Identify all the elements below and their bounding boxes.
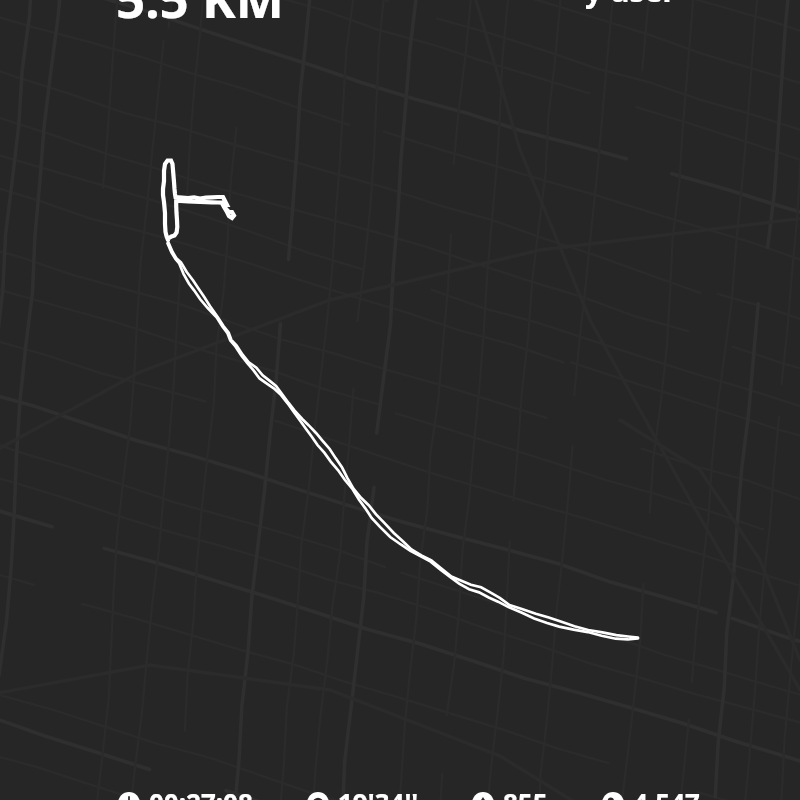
button[interactable]: Pace [307, 785, 419, 800]
button[interactable]: Calories [472, 785, 548, 800]
staticText: 00:27:08 [149, 785, 253, 800]
button[interactable]: Route map [0, 0, 800, 800]
staticText: 855 [503, 785, 548, 800]
button[interactable]: Duration [118, 785, 253, 800]
button[interactable]: 5.5 KM [116, 0, 284, 32]
staticText: 19'34'' [338, 785, 419, 800]
button[interactable]: y user [585, 0, 676, 11]
button[interactable]: Steps [602, 785, 700, 800]
staticText: 4,547 [633, 785, 700, 800]
